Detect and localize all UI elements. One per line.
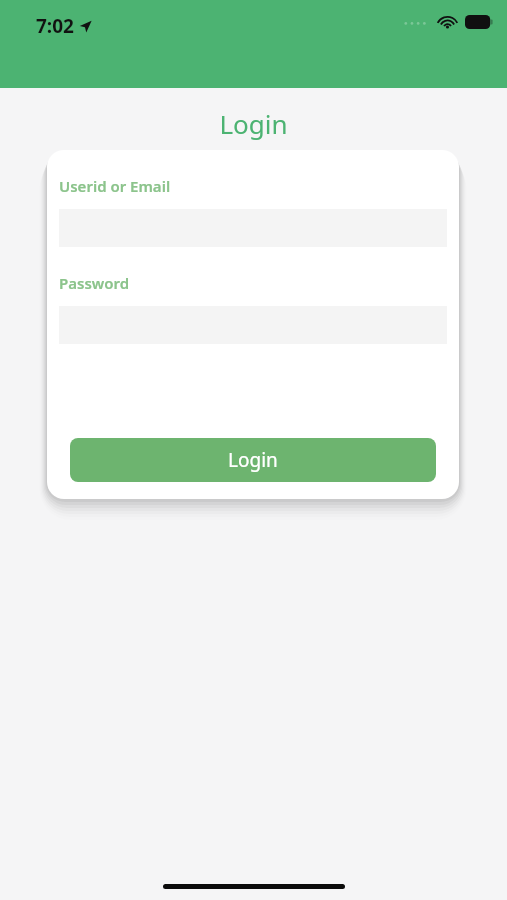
staticText: 7:02 (36, 13, 74, 39)
button[interactable]: Login (70, 438, 436, 482)
staticText: Login (0, 106, 507, 141)
staticText: Password (59, 273, 130, 293)
staticText: Userid or Email (59, 176, 171, 196)
staticText: Login (228, 447, 278, 473)
